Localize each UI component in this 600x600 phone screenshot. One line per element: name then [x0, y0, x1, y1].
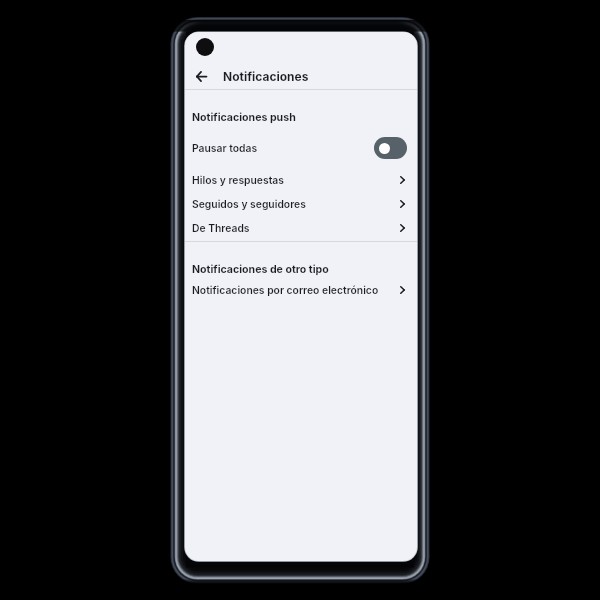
other: Pausar todas [374, 137, 407, 159]
staticText: Hilos y respuestas [192, 174, 284, 187]
button[interactable]: Hilos y respuestas [185, 168, 417, 192]
staticText: Notificaciones push [192, 111, 296, 124]
button[interactable]: Seguidos y seguidores [185, 192, 417, 216]
button[interactable]: Notificaciones por correo electrónico [185, 278, 417, 302]
button[interactable]: Atrás [189, 64, 213, 88]
staticText: Notificaciones [223, 69, 309, 84]
staticText: Pausar todas [192, 142, 258, 155]
staticText: Notificaciones por correo electrónico [192, 284, 379, 297]
staticText: Seguidos y seguidores [192, 198, 306, 211]
staticText: De Threads [192, 222, 250, 235]
button[interactable]: De Threads [185, 216, 417, 240]
button[interactable]: Pausar todas [185, 135, 417, 161]
staticText: Notificaciones de otro tipo [192, 263, 329, 276]
